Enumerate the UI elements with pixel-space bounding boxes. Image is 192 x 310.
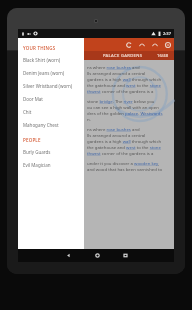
button[interactable]: Settings [163,40,172,49]
button[interactable]: Back [59,249,77,262]
button[interactable]: Undo [137,40,146,49]
staticText: ns where rose bushes and lls arranged ar… [87,64,162,94]
button[interactable]: Home [88,249,106,262]
staticText: Burly Guards [23,149,51,155]
staticText: ns where rose bushes and lls arranged ar… [87,126,162,156]
staticText: Chit [23,109,32,115]
button[interactable]: Redo [150,40,159,49]
button[interactable]: Black Shirt (worn) [23,53,81,66]
staticText: Door Mat [23,96,43,102]
button[interactable]: YOUR THINGS [23,42,81,53]
staticText: Denim Jeans (worn) [23,70,65,76]
button[interactable]: Chit [23,105,81,118]
staticText: YOUR THINGS [23,45,56,51]
button[interactable]: Mahogany Chest [23,118,81,131]
button[interactable]: PEOPLE [23,134,81,145]
button[interactable]: Door Mat [23,92,81,105]
button[interactable]: Burly Guards [23,145,81,158]
staticText: PEOPLE [23,137,41,143]
staticText: stone bridge. The river below you ou can… [87,98,163,122]
button[interactable]: Silver Wristband (worn) [23,79,81,92]
button[interactable]: Denim Jeans (worn) [23,66,81,79]
staticText: 16/48 [157,53,169,59]
staticText: Silver Wristband (worn) [23,83,73,89]
staticText: Black Shirt (worn) [23,57,61,63]
staticText: Mahogany Chest [23,122,59,128]
staticText: Evil Magician [23,162,51,168]
staticText: 2:37 [163,31,171,36]
staticText: PALACE GARDENS [103,53,143,59]
button[interactable]: Recent apps [116,249,134,262]
button[interactable]: Evil Magician [23,158,81,171]
staticText: under it you discover a wooden key, and … [87,160,163,172]
button[interactable]: Refresh [124,40,133,49]
